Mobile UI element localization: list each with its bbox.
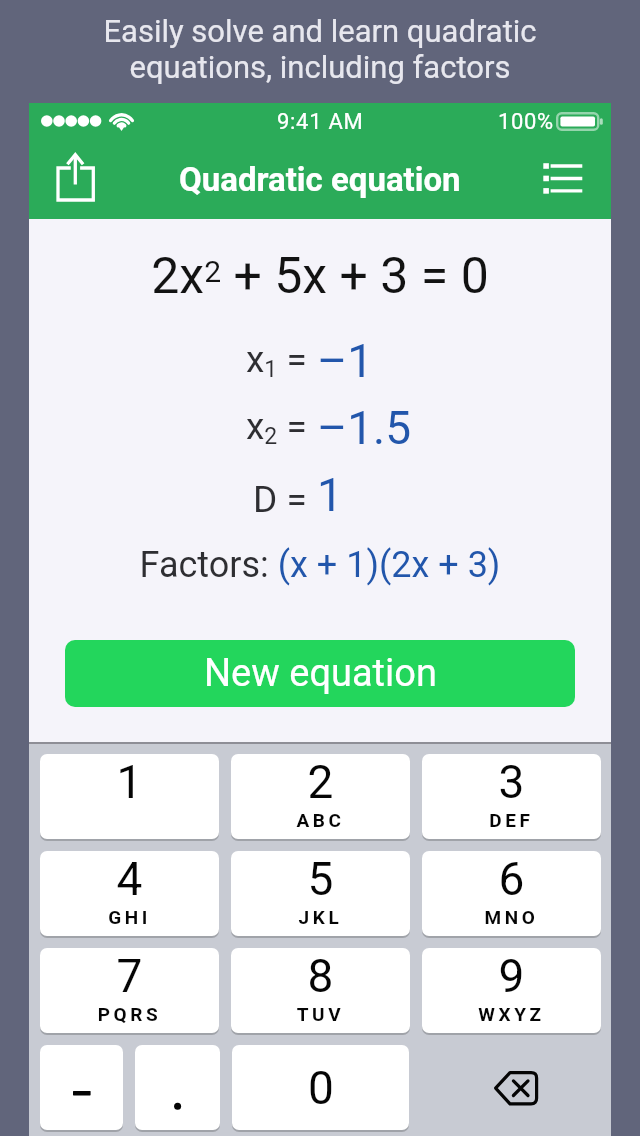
button[interactable]: 1	[40, 754, 219, 839]
button[interactable]	[135, 1045, 220, 1130]
staticText: 6	[422, 852, 601, 906]
staticText: MNO	[422, 906, 601, 928]
staticText: Quadratic equation	[179, 160, 461, 199]
button[interactable]: 3	[422, 754, 601, 839]
button[interactable]: 0	[232, 1045, 409, 1130]
staticText: 2	[231, 755, 410, 809]
staticText: 0	[308, 1061, 334, 1115]
button[interactable]: Share	[43, 142, 109, 214]
staticText: 9:41 AM	[277, 109, 364, 135]
staticText: New equation	[204, 651, 437, 696]
button[interactable]: 8	[231, 948, 410, 1033]
staticText: D =	[253, 478, 307, 521]
button[interactable]: 5	[231, 851, 410, 936]
button[interactable]: Menu	[525, 148, 597, 210]
staticText: JKL	[231, 906, 410, 928]
staticText: ABC	[231, 809, 410, 831]
staticText: –1	[317, 334, 374, 388]
button[interactable]: Backspace	[459, 1045, 569, 1130]
staticText: 5	[231, 852, 410, 906]
staticText: WXYZ	[422, 1003, 601, 1025]
button[interactable]: 9	[422, 948, 601, 1033]
staticText: PQRS	[40, 1003, 219, 1025]
staticText: x1 =	[246, 338, 307, 383]
staticText: 8	[231, 949, 410, 1003]
button[interactable]: 6	[422, 851, 601, 936]
button[interactable]: 4	[40, 851, 219, 936]
staticText: Easily solve and learn quadratic equatio…	[0, 13, 640, 85]
staticText: 9	[422, 949, 601, 1003]
staticText: Factors: (x + 1)(2x + 3)	[29, 544, 611, 586]
staticText: x2 =	[246, 405, 307, 450]
staticText: 100%	[498, 109, 554, 135]
staticText: DEF	[422, 809, 601, 831]
staticText: 4	[40, 852, 219, 906]
staticText: 1	[40, 755, 219, 809]
staticText: GHI	[40, 906, 219, 928]
button[interactable]: 7	[40, 948, 219, 1033]
staticText: TUV	[231, 1003, 410, 1025]
button[interactable]: 2	[231, 754, 410, 839]
staticText: 2x2 + 5x + 3 = 0	[29, 247, 611, 306]
button[interactable]: New equation	[65, 640, 575, 707]
staticText: –1.5	[317, 401, 412, 455]
staticText: 7	[40, 949, 219, 1003]
staticText: 1	[317, 468, 343, 522]
staticText: 3	[422, 755, 601, 809]
button[interactable]	[40, 1045, 123, 1130]
